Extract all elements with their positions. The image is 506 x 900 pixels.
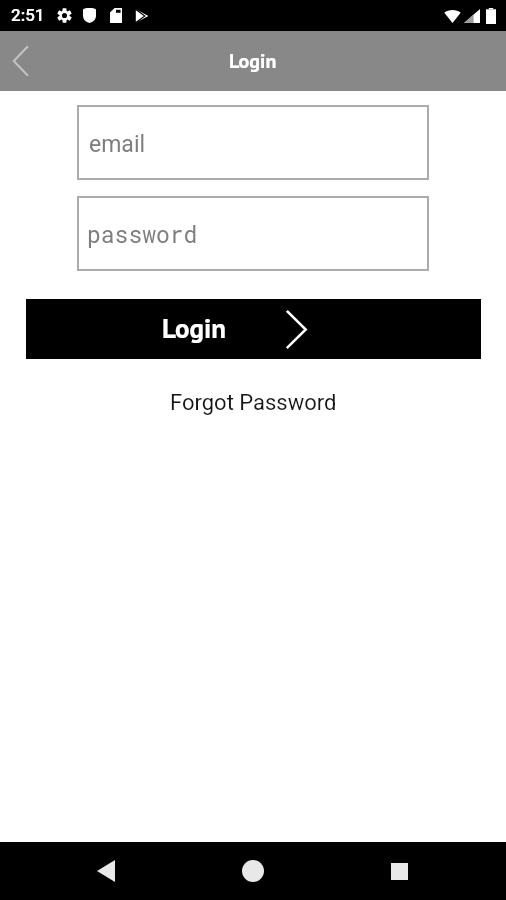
- button[interactable]: Forgot Password: [158, 385, 349, 421]
- button[interactable]: email: [77, 105, 429, 180]
- staticText: email: [89, 131, 146, 158]
- button[interactable]: password: [77, 196, 429, 271]
- staticText: Forgot Password: [170, 390, 337, 416]
- button[interactable]: Back: [33, 842, 179, 900]
- staticText: password: [87, 219, 198, 249]
- staticText: Login: [229, 48, 277, 74]
- button[interactable]: Login: [26, 299, 481, 359]
- staticText: Login: [162, 311, 226, 346]
- button[interactable]: Recent apps: [326, 842, 473, 900]
- button[interactable]: Home: [179, 842, 326, 900]
- button[interactable]: Back: [0, 41, 40, 81]
- staticText: 2:51: [11, 5, 45, 25]
